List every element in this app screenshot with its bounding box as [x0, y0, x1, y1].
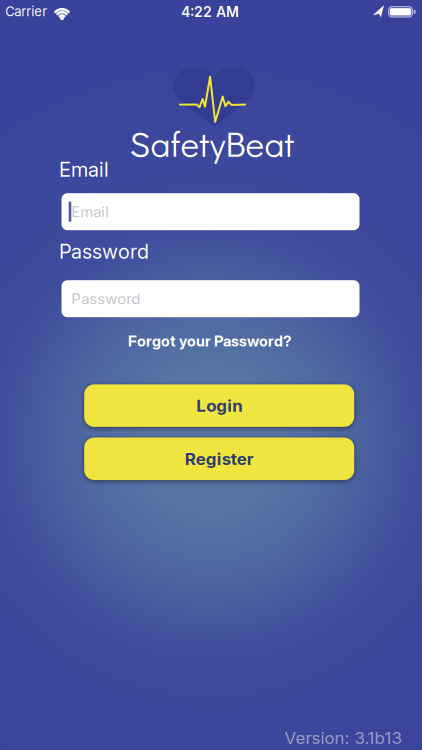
textField[interactable]: Password — [61, 280, 359, 317]
staticText: Version: 3.1b13 — [284, 728, 401, 748]
button[interactable]: Forgot your Password? — [128, 332, 292, 350]
staticText: Forgot your Password? — [128, 332, 292, 350]
staticText: Carrier — [5, 4, 47, 19]
staticText: Email — [59, 158, 109, 181]
staticText: Password — [71, 290, 140, 308]
staticText: SafetyBeat — [129, 119, 294, 166]
button[interactable]: Register — [84, 438, 354, 480]
staticText: 4:22 AM — [181, 4, 239, 20]
staticText: Login — [196, 396, 242, 416]
staticText: Password — [59, 240, 149, 263]
textField[interactable]: Email — [61, 193, 359, 230]
staticText: Email — [71, 203, 109, 221]
button[interactable]: Login — [84, 384, 354, 427]
staticText: Register — [185, 449, 254, 469]
